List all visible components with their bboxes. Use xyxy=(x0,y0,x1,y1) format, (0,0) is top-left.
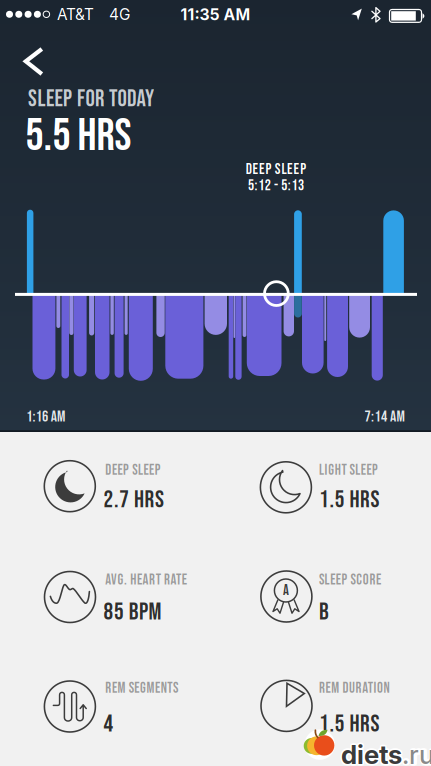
staticText: diets.ru xyxy=(343,739,431,766)
staticText: 5.5 HRS xyxy=(25,109,131,163)
staticText: diets.ru xyxy=(340,740,431,766)
staticText: diets xyxy=(341,739,402,766)
staticText: diets.ru xyxy=(341,737,431,766)
staticText: 1.5 HRS xyxy=(319,710,379,739)
staticText: 1.5 HRS xyxy=(319,486,379,514)
staticText: AT&T xyxy=(57,5,94,24)
staticText: REM SEGMENTS xyxy=(105,679,178,697)
staticText: SLEEP FOR TODAY xyxy=(28,85,154,113)
staticText: 11:35 AM xyxy=(180,5,250,24)
staticText: diets.ru xyxy=(339,739,431,766)
staticText: 1:16 AM xyxy=(26,407,65,426)
staticText: 85 BPM xyxy=(103,598,161,627)
staticText: 2.7 HRS xyxy=(103,486,164,514)
staticText: DEEP SLEEP xyxy=(105,461,161,479)
staticText: SLEEP SCORE xyxy=(319,571,381,589)
staticText: diets.ru xyxy=(341,740,431,766)
staticText: 4 xyxy=(103,710,113,739)
staticText: AVG. HEART RATE xyxy=(105,571,187,589)
staticText: diets.ru xyxy=(340,738,431,766)
staticText: 5:12 - 5:13 xyxy=(248,176,304,195)
staticText: diets.ru xyxy=(342,738,431,766)
staticText: REM DURATION xyxy=(319,679,390,697)
staticText: B xyxy=(319,598,329,627)
staticText: diets.ru xyxy=(342,740,431,766)
staticText: .ru xyxy=(402,739,431,766)
staticText: DEEP SLEEP xyxy=(246,160,306,178)
staticText: A xyxy=(283,582,289,599)
button[interactable]: Back xyxy=(17,41,51,81)
staticText: 4G xyxy=(109,5,130,24)
staticText: LIGHT SLEEP xyxy=(319,461,378,479)
staticText: 7:14 AM xyxy=(364,407,404,426)
